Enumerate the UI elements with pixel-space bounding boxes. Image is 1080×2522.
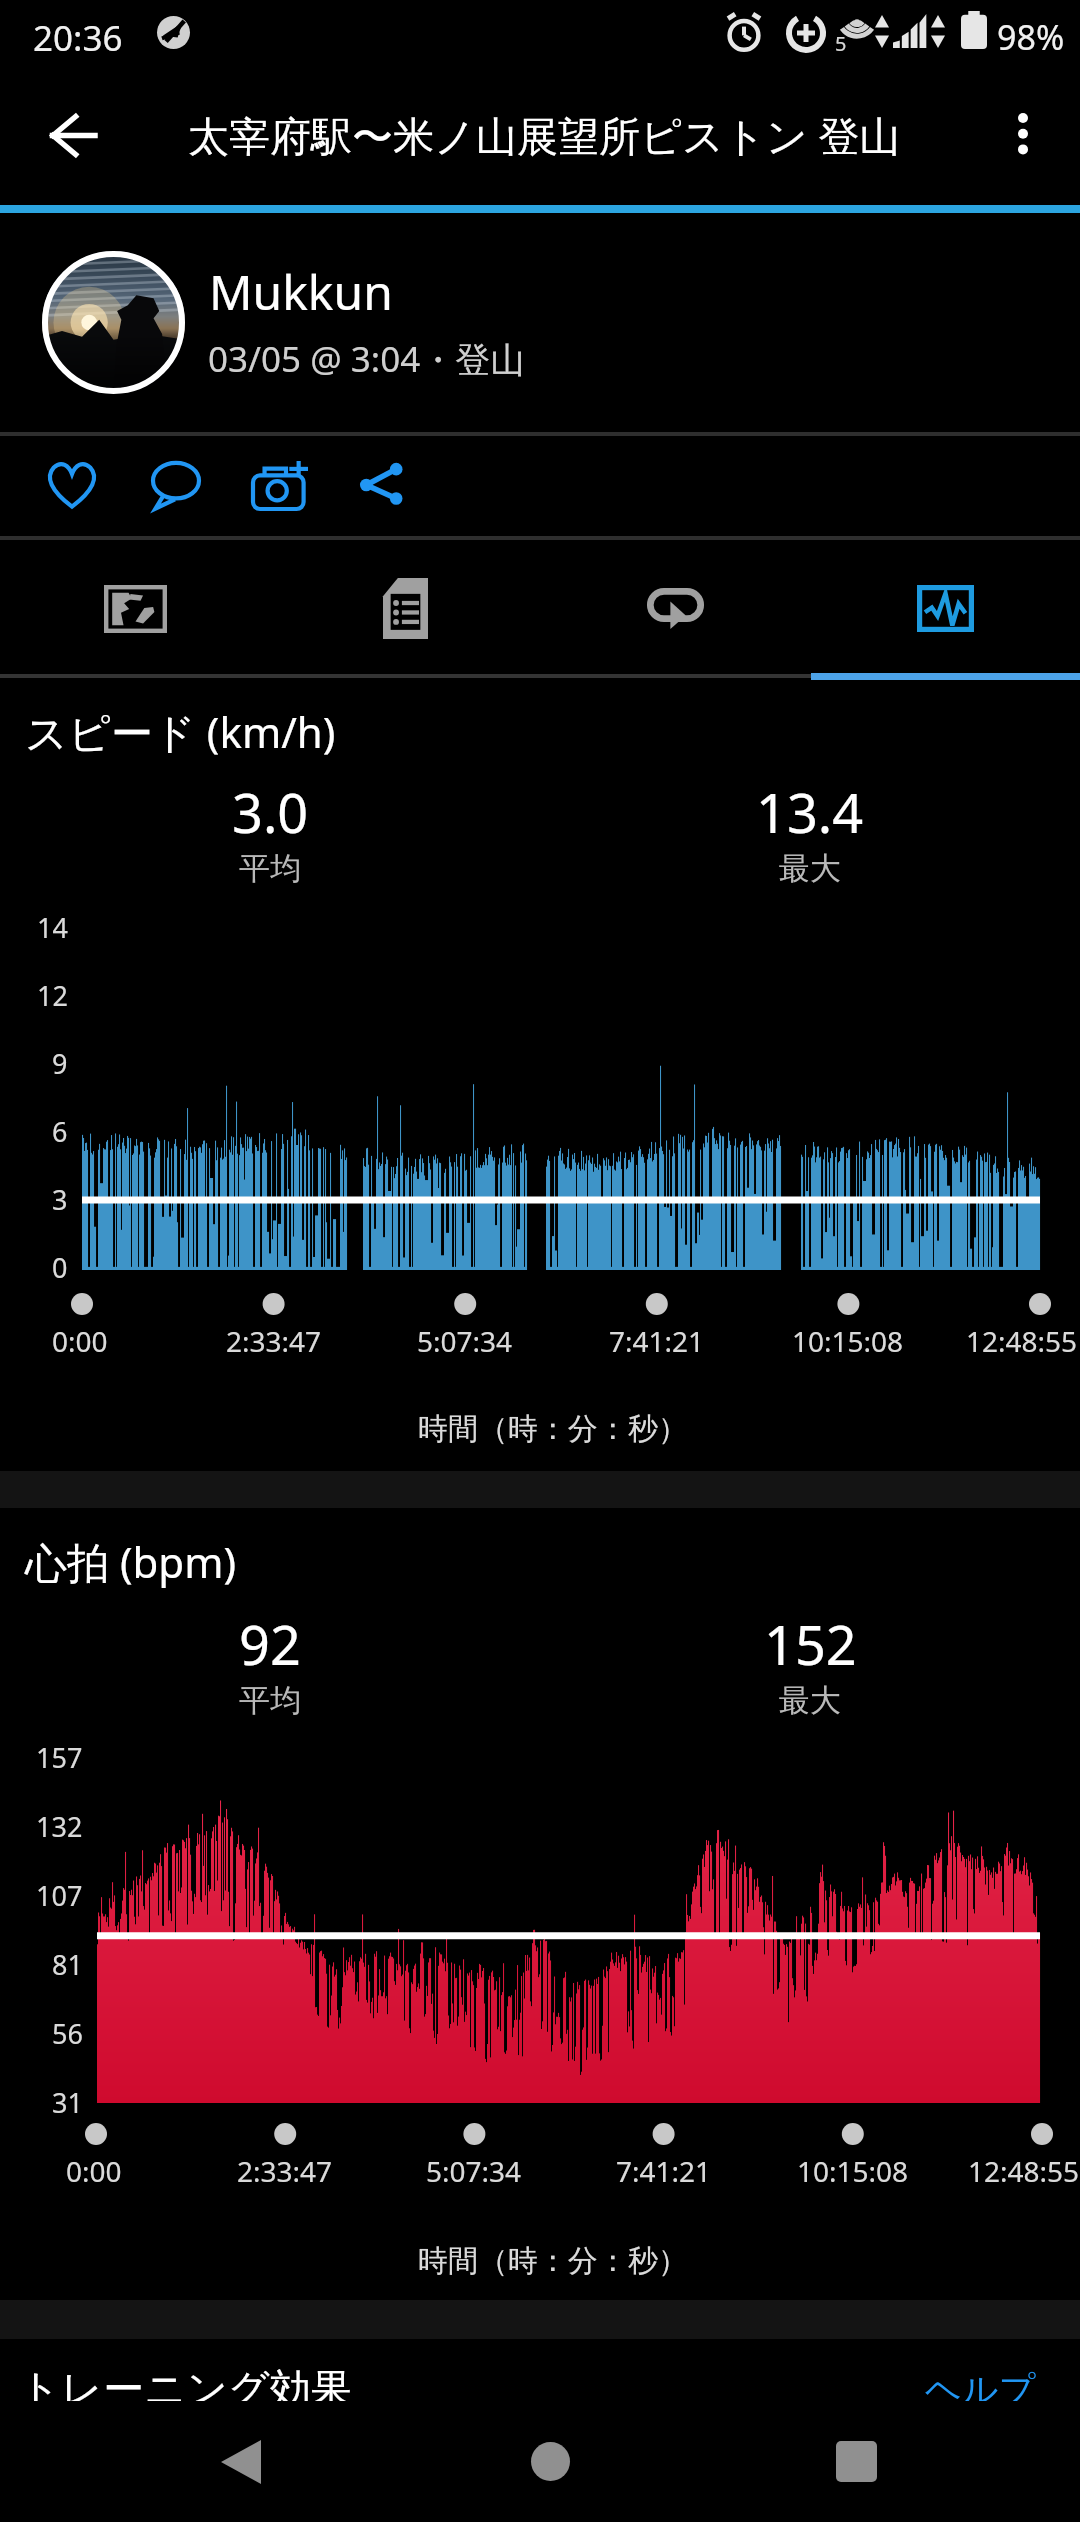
- button[interactable]: Comment: [124, 433, 228, 537]
- staticText: スピード (km/h): [25, 703, 336, 760]
- staticText: 0: [52, 1249, 68, 1286]
- button[interactable]: Add photo: [228, 433, 332, 537]
- staticText: 10:15:08: [797, 2152, 909, 2190]
- staticText: トレーニング効果: [19, 2364, 352, 2416]
- staticText: 時間（時：分：秒）: [418, 1410, 688, 1448]
- staticText: 107: [36, 1877, 83, 1914]
- button[interactable]: More options: [977, 88, 1069, 180]
- staticText: 03/05 @ 3:04・登山: [208, 335, 526, 383]
- staticText: 5:07:34: [426, 2152, 522, 2190]
- staticText: 132: [36, 1808, 83, 1845]
- staticText: 平均: [239, 849, 301, 888]
- button[interactable]: Details: [270, 539, 540, 678]
- staticText: 12: [37, 977, 68, 1014]
- staticText: 81: [52, 1946, 83, 1983]
- staticText: Mukkun: [209, 259, 393, 324]
- staticText: 3.0: [232, 775, 309, 849]
- button[interactable]: Laps: [540, 539, 810, 678]
- staticText: 太宰府駅〜米ノ山展望所ピストン 登山: [188, 107, 901, 163]
- button[interactable]: トレーニング効果: [0, 2339, 1080, 2421]
- staticText: 2:33:47: [226, 1322, 322, 1360]
- button[interactable]: Like: [20, 433, 124, 537]
- staticText: 5: [835, 30, 847, 57]
- staticText: 平均: [239, 1681, 301, 1720]
- staticText: 9: [52, 1045, 68, 1082]
- staticText: 20:36: [33, 14, 123, 62]
- staticText: 31: [52, 2084, 83, 2121]
- staticText: 6: [52, 1113, 68, 1150]
- button[interactable]: Share: [331, 433, 435, 537]
- staticText: 10:15:08: [792, 1322, 904, 1360]
- button[interactable]: Charts: [810, 539, 1080, 678]
- staticText: 12:48:55: [968, 2152, 1080, 2190]
- staticText: 12:48:55: [966, 1322, 1078, 1360]
- staticText: 0:00: [66, 2152, 122, 2190]
- staticText: 2:33:47: [237, 2152, 333, 2190]
- staticText: 98%: [997, 14, 1065, 60]
- staticText: 56: [52, 2015, 83, 2052]
- staticText: 心拍 (bpm): [25, 1533, 237, 1590]
- staticText: 92: [239, 1607, 301, 1681]
- staticText: 最大: [779, 1681, 841, 1720]
- staticText: 7:41:21: [616, 2152, 712, 2190]
- button[interactable]: Mukkun: [0, 211, 1080, 431]
- staticText: 7:41:21: [609, 1322, 705, 1360]
- button[interactable]: Back: [18, 80, 128, 190]
- button[interactable]: Recents: [736, 2401, 976, 2522]
- staticText: 152: [764, 1607, 857, 1681]
- staticText: 3: [52, 1181, 68, 1218]
- button[interactable]: Map: [0, 539, 270, 678]
- staticText: 最大: [779, 849, 841, 888]
- staticText: 5:07:34: [417, 1322, 513, 1360]
- button[interactable]: Back: [121, 2401, 361, 2522]
- staticText: 時間（時：分：秒）: [418, 2242, 688, 2280]
- staticText: 14: [37, 909, 68, 946]
- staticText: ヘルプ: [925, 2367, 1036, 2412]
- staticText: 13.4: [756, 775, 864, 849]
- staticText: 0:00: [52, 1322, 108, 1360]
- staticText: 157: [36, 1739, 83, 1776]
- button[interactable]: Home: [430, 2401, 670, 2522]
